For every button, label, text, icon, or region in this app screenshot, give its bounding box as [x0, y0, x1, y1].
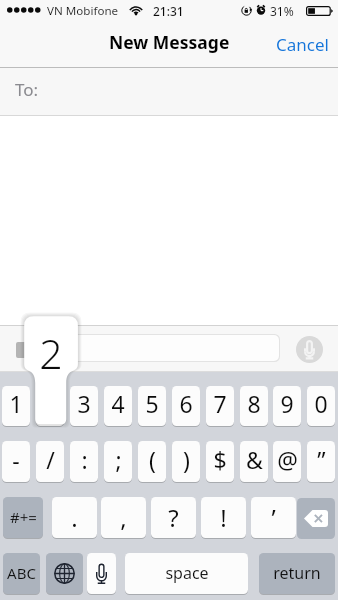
staticText: . [71, 501, 78, 534]
staticText: return [273, 562, 321, 584]
staticText: New Message [109, 30, 230, 54]
staticText: : [81, 444, 88, 475]
staticText: Cancel [276, 33, 329, 56]
staticText: space [165, 562, 209, 584]
staticText: 7 [213, 388, 227, 419]
staticText: ? [168, 501, 179, 534]
staticText: / [46, 444, 55, 475]
staticText: @ [277, 444, 298, 475]
staticText: ! [220, 501, 227, 534]
button[interactable]: ; [104, 441, 132, 482]
button[interactable]: . [52, 497, 97, 538]
button[interactable]: 2 [36, 386, 64, 426]
button[interactable]: 5 [138, 386, 166, 426]
staticText: 31% [270, 3, 294, 19]
button[interactable]: space [125, 553, 248, 594]
button[interactable]: ! [201, 497, 246, 538]
staticText: , [120, 501, 127, 534]
button[interactable]: 6 [172, 386, 200, 426]
button[interactable]: / [36, 441, 64, 482]
button[interactable]: ( [138, 441, 166, 482]
button[interactable]: Dictate [87, 553, 116, 594]
button[interactable] [35, 335, 279, 361]
staticText: $ [213, 444, 227, 475]
button[interactable]: 0 [307, 386, 335, 426]
staticText: 9 [280, 388, 294, 419]
button[interactable]: Change keyboard [46, 553, 83, 594]
staticText: 1 [9, 388, 23, 419]
button[interactable]: : [70, 441, 98, 482]
staticText: ABC [7, 563, 36, 583]
button[interactable]: Backspace [297, 498, 335, 539]
button[interactable]: $ [206, 441, 234, 482]
staticText: & [246, 444, 263, 475]
button[interactable]: ABC [3, 553, 40, 594]
button[interactable]: Cancel [267, 22, 338, 67]
button[interactable]: 7 [206, 386, 234, 426]
button[interactable]: Dictate [296, 336, 323, 363]
button[interactable]: 3 [70, 386, 98, 426]
button[interactable]: 9 [273, 386, 301, 426]
button[interactable]: 8 [240, 386, 268, 426]
button[interactable]: Camera [16, 342, 34, 358]
staticText: 6 [179, 388, 193, 419]
staticText: ( [149, 444, 156, 475]
staticText: To: [15, 78, 39, 101]
staticText: 3 [77, 388, 91, 419]
button[interactable]: ” [307, 441, 335, 482]
button[interactable]: To: [0, 68, 338, 116]
button[interactable]: - [2, 441, 30, 482]
staticText: 2 [24, 325, 78, 381]
button[interactable]: return [259, 553, 335, 594]
staticText: 0 [314, 388, 328, 419]
button[interactable]: ’ [251, 497, 296, 538]
staticText: ” [317, 444, 326, 475]
staticText: 8 [247, 388, 261, 419]
staticText: ; [115, 444, 122, 475]
button[interactable]: ? [151, 497, 196, 538]
staticText: ) [183, 444, 190, 475]
button[interactable]: & [240, 441, 268, 482]
staticText: #+= [10, 507, 37, 527]
button[interactable]: ) [172, 441, 200, 482]
staticText: ’ [271, 501, 276, 534]
button[interactable]: 4 [104, 386, 132, 426]
staticText: - [12, 444, 20, 475]
staticText: 21:31 [153, 3, 184, 19]
button[interactable]: #+= [3, 497, 43, 538]
staticText: 5 [145, 388, 159, 419]
staticText: VN Mobifone [47, 3, 119, 19]
button[interactable]: , [101, 497, 146, 538]
button[interactable]: 1 [2, 386, 30, 426]
staticText: 4 [111, 388, 125, 419]
button[interactable]: @ [273, 441, 301, 482]
